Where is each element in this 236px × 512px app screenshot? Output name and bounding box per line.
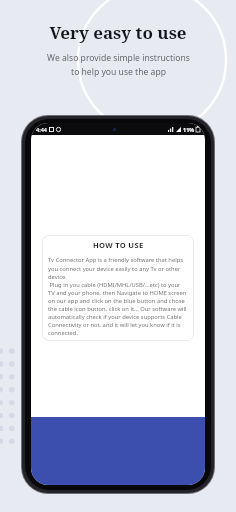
staticText: Very easy to use: [49, 21, 187, 44]
staticText: We also provide simple instructions to h…: [47, 52, 190, 77]
staticText: HOW TO USE: [93, 240, 144, 250]
button[interactable]: HOW TO USE: [42, 235, 194, 341]
staticText: 11%: [183, 126, 195, 133]
button[interactable]: Blue action panel: [31, 417, 205, 485]
staticText: 4:44: [36, 126, 47, 133]
staticText: Tv Connector App is a friendly software …: [48, 256, 188, 336]
